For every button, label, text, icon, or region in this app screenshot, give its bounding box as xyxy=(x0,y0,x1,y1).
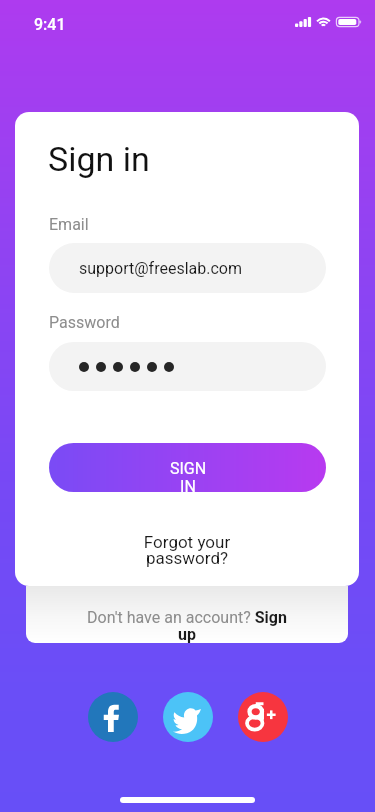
staticText: Email xyxy=(49,215,89,234)
staticText: support@freeslab.com xyxy=(79,259,242,278)
button[interactable]: Forgot your password? xyxy=(142,532,232,569)
staticText: Password xyxy=(49,313,120,332)
staticText: 9:41 xyxy=(34,15,66,34)
button[interactable]: Sign in with Google Plus xyxy=(238,692,288,742)
button[interactable]: Don't have an account? Sign xyxy=(26,586,348,643)
staticText: SIGN IN xyxy=(169,459,207,492)
staticText: Sign in xyxy=(48,139,150,179)
staticText: up xyxy=(26,625,348,643)
staticText: Don't have an account? Sign xyxy=(26,608,348,627)
button[interactable] xyxy=(49,342,326,391)
button[interactable]: support@freeslab.com xyxy=(49,243,326,293)
button[interactable]: Sign in with Facebook xyxy=(88,692,138,742)
button[interactable]: Sign in with Twitter xyxy=(163,692,213,742)
button[interactable]: SIGN IN xyxy=(49,443,326,492)
